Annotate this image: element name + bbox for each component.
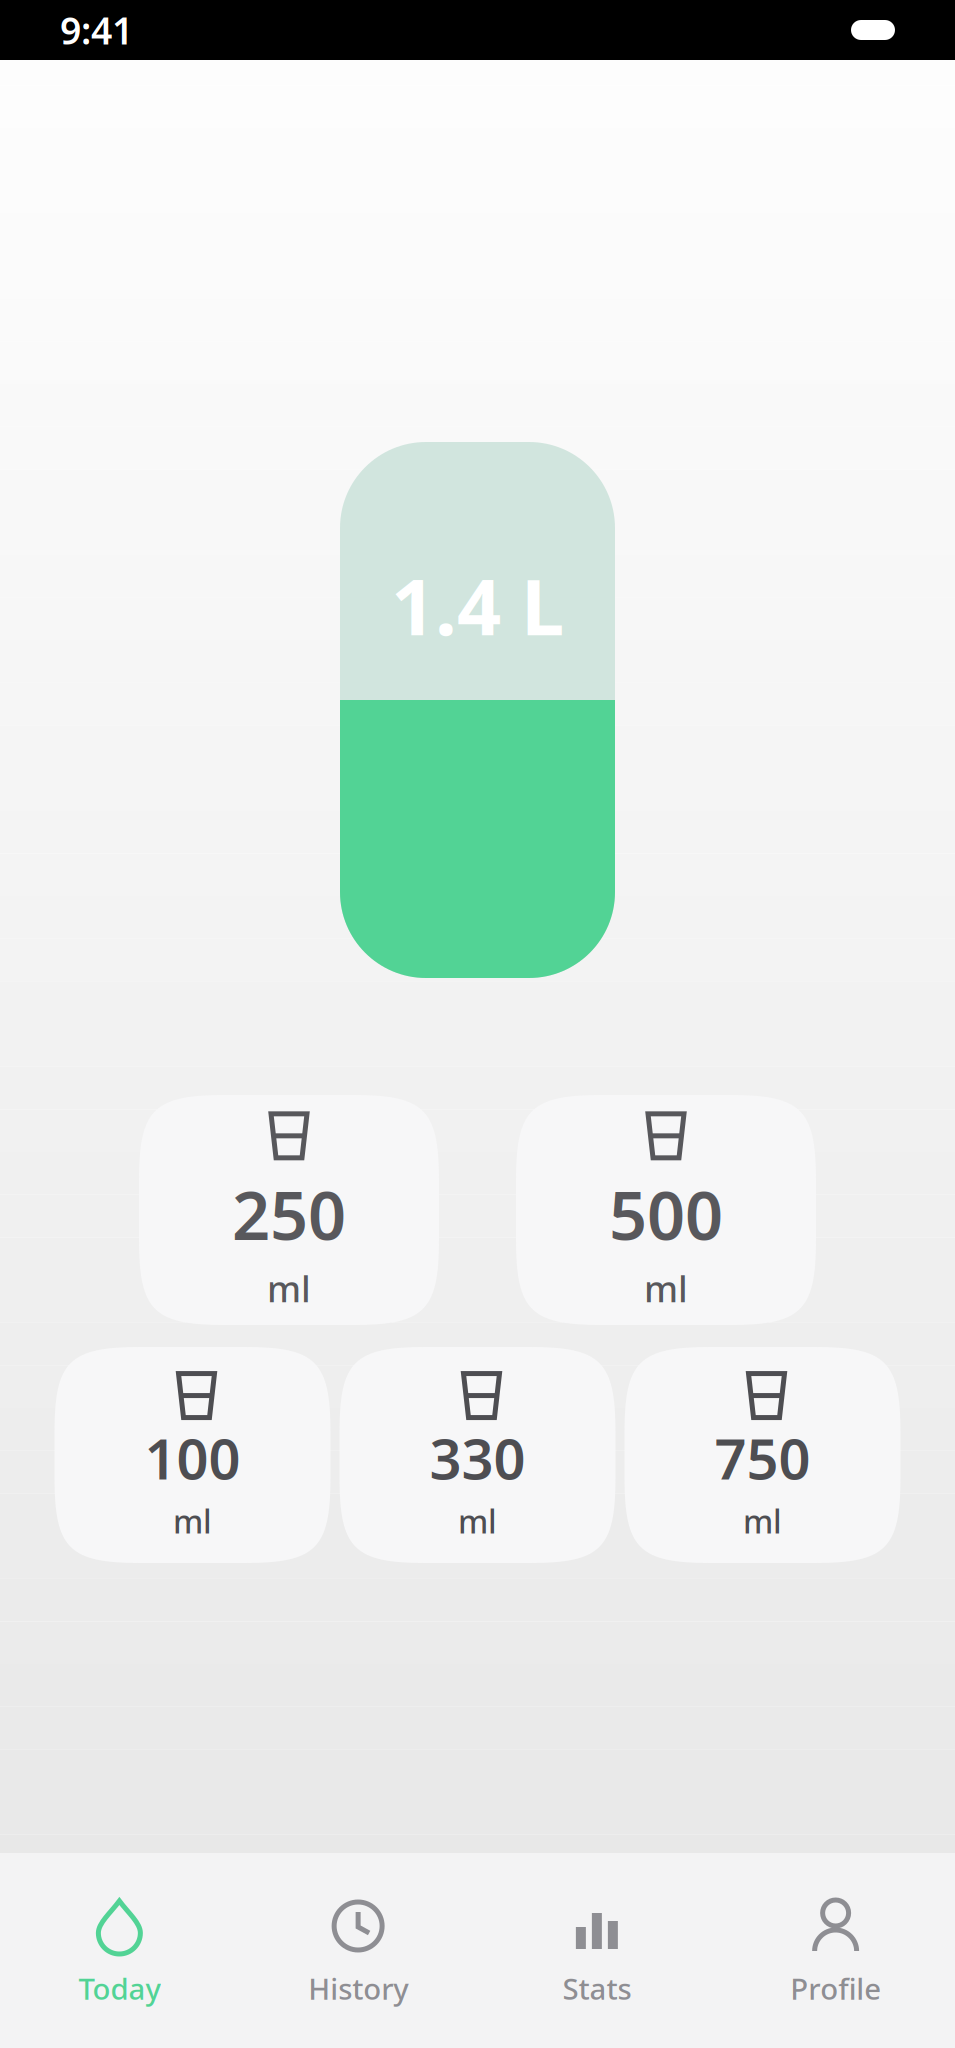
staticText: ml (743, 1500, 782, 1542)
staticText: 250 (232, 1170, 346, 1258)
staticText: 500 (609, 1170, 723, 1258)
button[interactable]: 250 (139, 1095, 439, 1325)
staticText: Profile (790, 1969, 881, 2008)
staticText: 9:41 (60, 5, 133, 55)
staticText: 1.4 L (391, 554, 564, 657)
button[interactable]: Today (0, 1853, 239, 2048)
button[interactable]: 500 (516, 1095, 816, 1325)
staticText: Today (78, 1969, 160, 2008)
button[interactable]: 330 (339, 1347, 615, 1563)
staticText: Stats (562, 1969, 631, 2008)
button[interactable]: Profile (716, 1853, 955, 2048)
staticText: ml (458, 1500, 497, 1542)
button[interactable]: Stats (477, 1853, 716, 2048)
staticText: History (308, 1969, 408, 2008)
staticText: ml (267, 1264, 311, 1312)
button[interactable]: 750 (624, 1347, 900, 1563)
staticText: ml (644, 1264, 688, 1312)
staticText: ml (173, 1500, 212, 1542)
staticText: 100 (144, 1421, 240, 1495)
button[interactable]: 100 (54, 1347, 330, 1563)
staticText: 750 (714, 1421, 810, 1495)
staticText: 330 (429, 1421, 525, 1495)
button[interactable]: History (239, 1853, 478, 2048)
